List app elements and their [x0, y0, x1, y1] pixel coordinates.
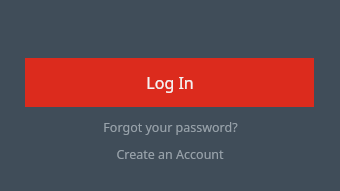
staticText: Log In [146, 72, 194, 94]
button[interactable]: Forgot your password? [0, 116, 340, 138]
button[interactable]: Create an Account [0, 143, 340, 165]
button[interactable]: Log In [25, 58, 314, 107]
staticText: Forgot your password? [103, 119, 238, 136]
staticText: Create an Account [116, 146, 224, 163]
